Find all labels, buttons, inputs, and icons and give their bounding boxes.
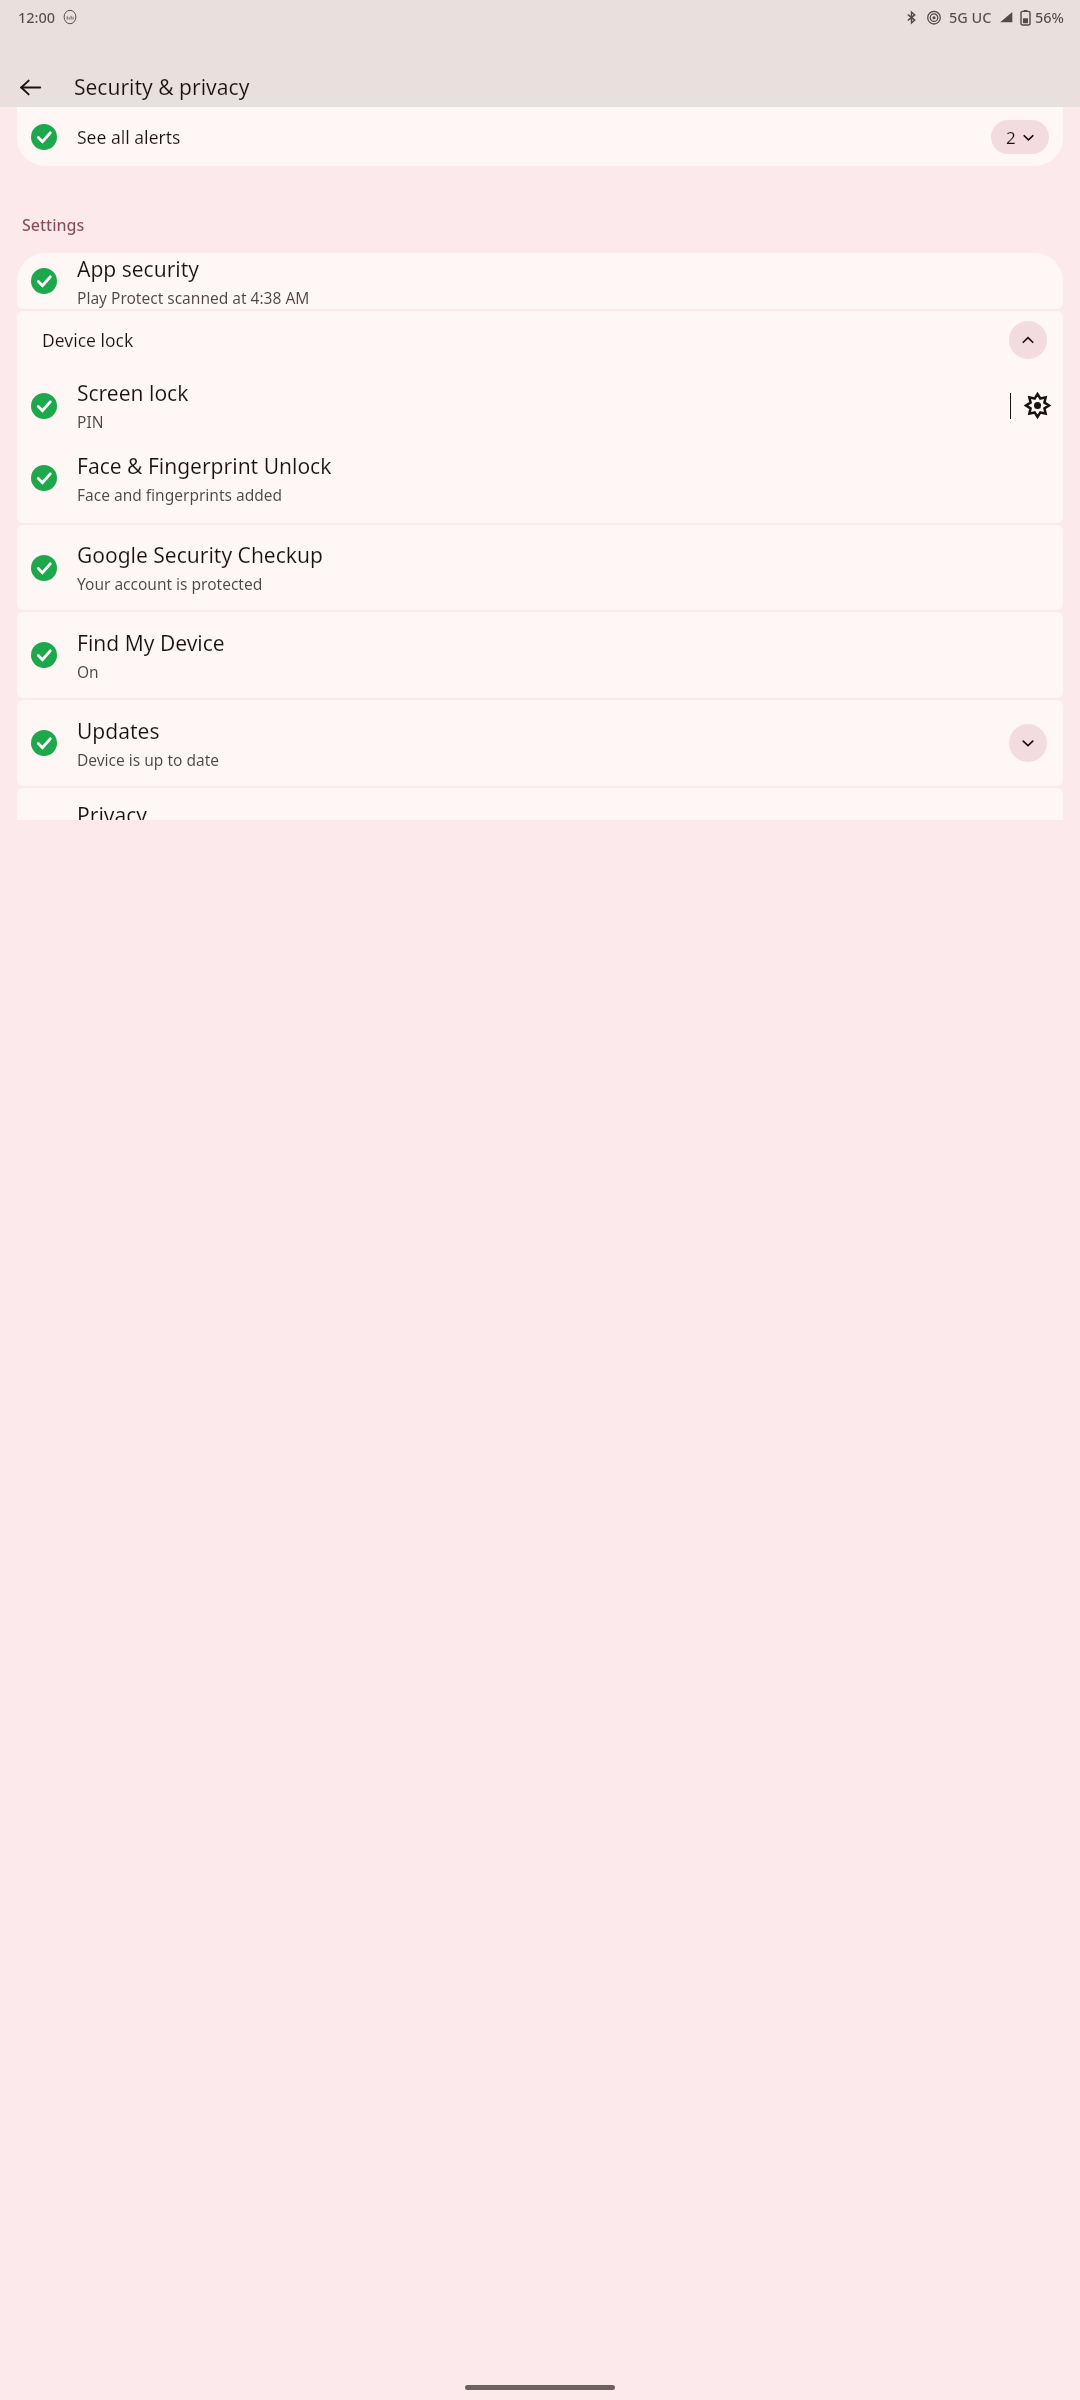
button[interactable]: Updates: [17, 700, 1063, 786]
staticText: Updates: [77, 717, 160, 746]
staticText: 56%: [1035, 7, 1064, 27]
staticText: Device is up to date: [77, 749, 219, 770]
staticText: App security: [77, 255, 200, 284]
button[interactable]: See all alerts: [17, 107, 1063, 166]
staticText: Settings: [22, 214, 85, 236]
button[interactable]: Find My Device: [17, 612, 1063, 698]
button[interactable]: App security: [17, 253, 1063, 309]
button[interactable]: Google Security Checkup: [17, 525, 1063, 610]
button[interactable]: Expand: [1009, 724, 1047, 762]
staticText: Privacy: [77, 801, 148, 820]
staticText: Face and fingerprints added: [77, 484, 282, 505]
staticText: Google Security Checkup: [77, 541, 323, 570]
button[interactable]: Collapse: [1009, 321, 1047, 359]
button[interactable]: Screen lock: [17, 369, 1010, 442]
staticText: 2: [1006, 126, 1016, 149]
staticText: Your account is protected: [77, 573, 263, 594]
button[interactable]: 2: [991, 120, 1049, 154]
staticText: 5G UC: [949, 7, 992, 27]
staticText: Play Protect scanned at 4:38 AM: [77, 287, 310, 308]
button[interactable]: Back: [8, 68, 52, 107]
button[interactable]: Face & Fingerprint Unlock: [17, 442, 1063, 514]
staticText: See all alerts: [77, 125, 181, 149]
staticText: Find My Device: [77, 629, 225, 658]
staticText: Security & privacy: [74, 73, 250, 102]
staticText: Screen lock: [77, 379, 189, 408]
button[interactable]: Device lock: [17, 311, 1063, 369]
staticText: Device lock: [42, 328, 134, 352]
button[interactable]: Privacy: [17, 788, 1063, 820]
staticText: On: [77, 661, 99, 682]
staticText: PIN: [77, 411, 104, 432]
staticText: Face & Fingerprint Unlock: [77, 452, 332, 481]
staticText: 12:00: [18, 7, 56, 27]
button[interactable]: Screen lock settings: [1011, 369, 1063, 442]
